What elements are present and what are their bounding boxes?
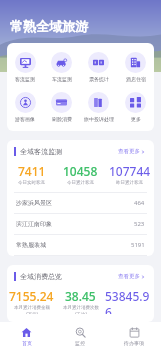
staticText: 7411	[18, 163, 46, 179]
staticText: 待办事项	[124, 340, 144, 346]
button[interactable]: 游客画像	[7, 89, 43, 125]
button[interactable]: 车流监测	[43, 49, 80, 85]
staticText: 38.45	[65, 288, 96, 304]
button[interactable]: 监控	[53, 325, 107, 348]
staticText: 旅中投诉处理	[84, 116, 114, 122]
button[interactable]: 票务统计	[80, 49, 117, 85]
staticText: 游客画像	[15, 116, 35, 122]
staticText: 刷脸消费	[52, 116, 72, 122]
staticText: 今日实时客流	[18, 180, 45, 186]
staticText: 464	[134, 199, 145, 207]
button[interactable]: 常熟服装城	[7, 235, 154, 255]
button[interactable]: 沙家浜风景区	[7, 193, 154, 213]
staticText: 5191	[131, 241, 145, 249]
staticText: 全域客流监测	[20, 147, 62, 156]
button[interactable]: 客流监测	[7, 49, 43, 85]
button[interactable]: 查看更多	[116, 271, 147, 282]
staticText: 53845.96	[105, 288, 154, 314]
button[interactable]: 待办事项	[107, 325, 161, 348]
button[interactable]: 旅中投诉处理	[80, 89, 117, 125]
staticText: 酒店住宿	[126, 76, 146, 82]
button[interactable]: 刷脸消费	[43, 89, 80, 125]
staticText: 523	[134, 220, 145, 228]
staticText: 7155.24	[9, 288, 54, 304]
staticText: 客流监测	[15, 76, 35, 82]
staticText: 票务统计	[89, 76, 109, 82]
staticText: 查看更多	[118, 273, 140, 280]
staticText: (万元)	[26, 311, 38, 314]
staticText: 本月累计消费金额	[14, 305, 50, 311]
staticText: 查看更多	[118, 148, 140, 155]
staticText: 本月累计消费次数	[63, 305, 99, 311]
button[interactable]: 首页	[0, 325, 53, 348]
button[interactable]: 查看更多	[116, 146, 147, 157]
staticText: 107744	[109, 163, 151, 179]
staticText: 今日累计客流	[67, 180, 94, 186]
staticText: 全域消费总览	[20, 272, 62, 281]
staticText: 滨江江南印象	[16, 220, 52, 228]
staticText: 常熟全域旅游	[10, 18, 88, 34]
button[interactable]: 酒店住宿	[117, 49, 154, 85]
staticText: 10458	[63, 163, 98, 179]
staticText: (千次)	[75, 311, 87, 314]
staticText: 监控	[75, 340, 85, 346]
staticText: 沙家浜风景区	[16, 199, 52, 207]
button[interactable]: 更多	[117, 89, 154, 125]
staticText: 常熟服装城	[16, 241, 46, 249]
staticText: 首页	[22, 340, 32, 346]
staticText: 更多	[131, 116, 141, 122]
staticText: 昨日累计客流	[116, 180, 143, 186]
staticText: 车流监测	[52, 76, 72, 82]
button[interactable]: 滨江江南印象	[7, 214, 154, 234]
